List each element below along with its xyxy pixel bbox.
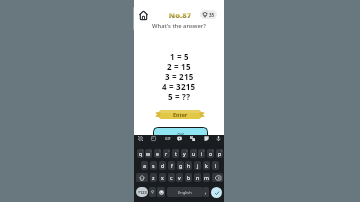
button[interactable]: ?123: [136, 187, 148, 197]
staticText: y: [183, 150, 186, 157]
staticText: 4 = 3215: [162, 81, 196, 91]
staticText: o: [209, 150, 213, 157]
staticText: k: [205, 162, 208, 169]
staticText: u: [192, 150, 196, 157]
staticText: No.87: [167, 10, 193, 20]
staticText: f: [171, 162, 173, 169]
staticText: m: [204, 174, 209, 181]
button[interactable]: b: [185, 173, 192, 182]
staticText: 7: [195, 149, 197, 153]
button[interactable]: m: [203, 173, 210, 182]
staticText: x: [161, 174, 164, 181]
staticText: 1: [142, 149, 144, 153]
button[interactable]: English: [167, 187, 203, 197]
staticText: v: [178, 174, 181, 181]
button[interactable]: j: [194, 161, 201, 170]
staticText: r: [165, 150, 168, 157]
button[interactable]: u: [190, 149, 197, 158]
button[interactable]: d: [159, 161, 166, 170]
staticText: i: [201, 150, 203, 157]
staticText: 6: [186, 149, 188, 153]
staticText: ,: [205, 189, 207, 195]
staticText: Enter: [173, 111, 188, 118]
staticText: 2 = 15: [167, 61, 191, 71]
button[interactable]: y: [181, 149, 188, 158]
staticText: 3 = 215: [165, 71, 194, 81]
button[interactable]: f: [168, 161, 175, 170]
button[interactable]: Settings: [149, 187, 156, 197]
staticText: 1 = 5: [170, 51, 189, 61]
staticText: t: [175, 150, 177, 157]
button[interactable]: Emoji: [157, 187, 165, 197]
staticText: n: [196, 174, 200, 181]
button[interactable]: gif: [164, 135, 171, 142]
button[interactable]: t: [172, 149, 179, 158]
button[interactable]: Home: [138, 10, 149, 21]
staticText: What's the answer?: [134, 22, 224, 30]
button[interactable]: l: [212, 161, 219, 170]
button[interactable]: OK: [153, 127, 208, 143]
staticText: GIF: [165, 136, 171, 141]
button[interactable]: translate: [189, 135, 196, 142]
button[interactable]: n: [194, 173, 201, 182]
button[interactable]: c: [168, 173, 175, 182]
button[interactable]: k: [203, 161, 210, 170]
button[interactable]: p: [216, 149, 223, 158]
button[interactable]: sticker: [203, 135, 210, 142]
staticText: OK: [177, 132, 185, 139]
staticText: 5 = ??: [168, 91, 191, 101]
button[interactable]: Backspace: [212, 173, 223, 182]
staticText: 3: [159, 149, 161, 153]
button[interactable]: a: [141, 161, 148, 170]
button[interactable]: r: [163, 149, 170, 158]
button[interactable]: Comma: [203, 187, 209, 197]
staticText: g: [179, 162, 183, 169]
staticText: s: [152, 162, 155, 169]
button[interactable]: mic: [215, 135, 222, 142]
staticText: 4: [168, 149, 170, 153]
button[interactable]: x: [159, 173, 166, 182]
staticText: l: [215, 162, 217, 169]
button[interactable]: h: [185, 161, 192, 170]
staticText: 35: [209, 12, 215, 18]
button[interactable]: grid: [137, 135, 144, 142]
staticText: 2: [150, 149, 152, 153]
staticText: a: [143, 162, 146, 169]
staticText: c: [170, 174, 173, 181]
button[interactable]: z: [150, 173, 157, 182]
button[interactable]: clipboard: [150, 135, 157, 142]
staticText: 0: [221, 149, 223, 153]
staticText: w: [146, 150, 151, 157]
button[interactable]: 35: [200, 10, 217, 19]
button[interactable]: g: [177, 161, 184, 170]
button[interactable]: s: [150, 161, 157, 170]
staticText: b: [187, 174, 191, 181]
button[interactable]: Shift: [136, 173, 148, 182]
button[interactable]: v: [176, 173, 183, 182]
staticText: 9: [212, 149, 214, 153]
staticText: p: [218, 150, 222, 157]
staticText: d: [161, 162, 165, 169]
button[interactable]: o: [207, 149, 214, 158]
staticText: ?123: [138, 190, 147, 195]
button[interactable]: e: [154, 149, 161, 158]
staticText: e: [156, 150, 159, 157]
staticText: 5: [177, 149, 179, 153]
staticText: 8: [203, 149, 205, 153]
button[interactable]: w: [145, 149, 152, 158]
button[interactable]: Enter: [155, 110, 205, 119]
button[interactable]: Enter: [211, 187, 222, 198]
staticText: h: [187, 162, 191, 169]
staticText: z: [152, 174, 155, 181]
button[interactable]: i: [198, 149, 205, 158]
staticText: j: [197, 162, 199, 169]
button[interactable]: q: [137, 149, 144, 158]
staticText: q: [139, 150, 143, 157]
button[interactable]: search: [176, 135, 183, 142]
staticText: English: [178, 190, 192, 195]
